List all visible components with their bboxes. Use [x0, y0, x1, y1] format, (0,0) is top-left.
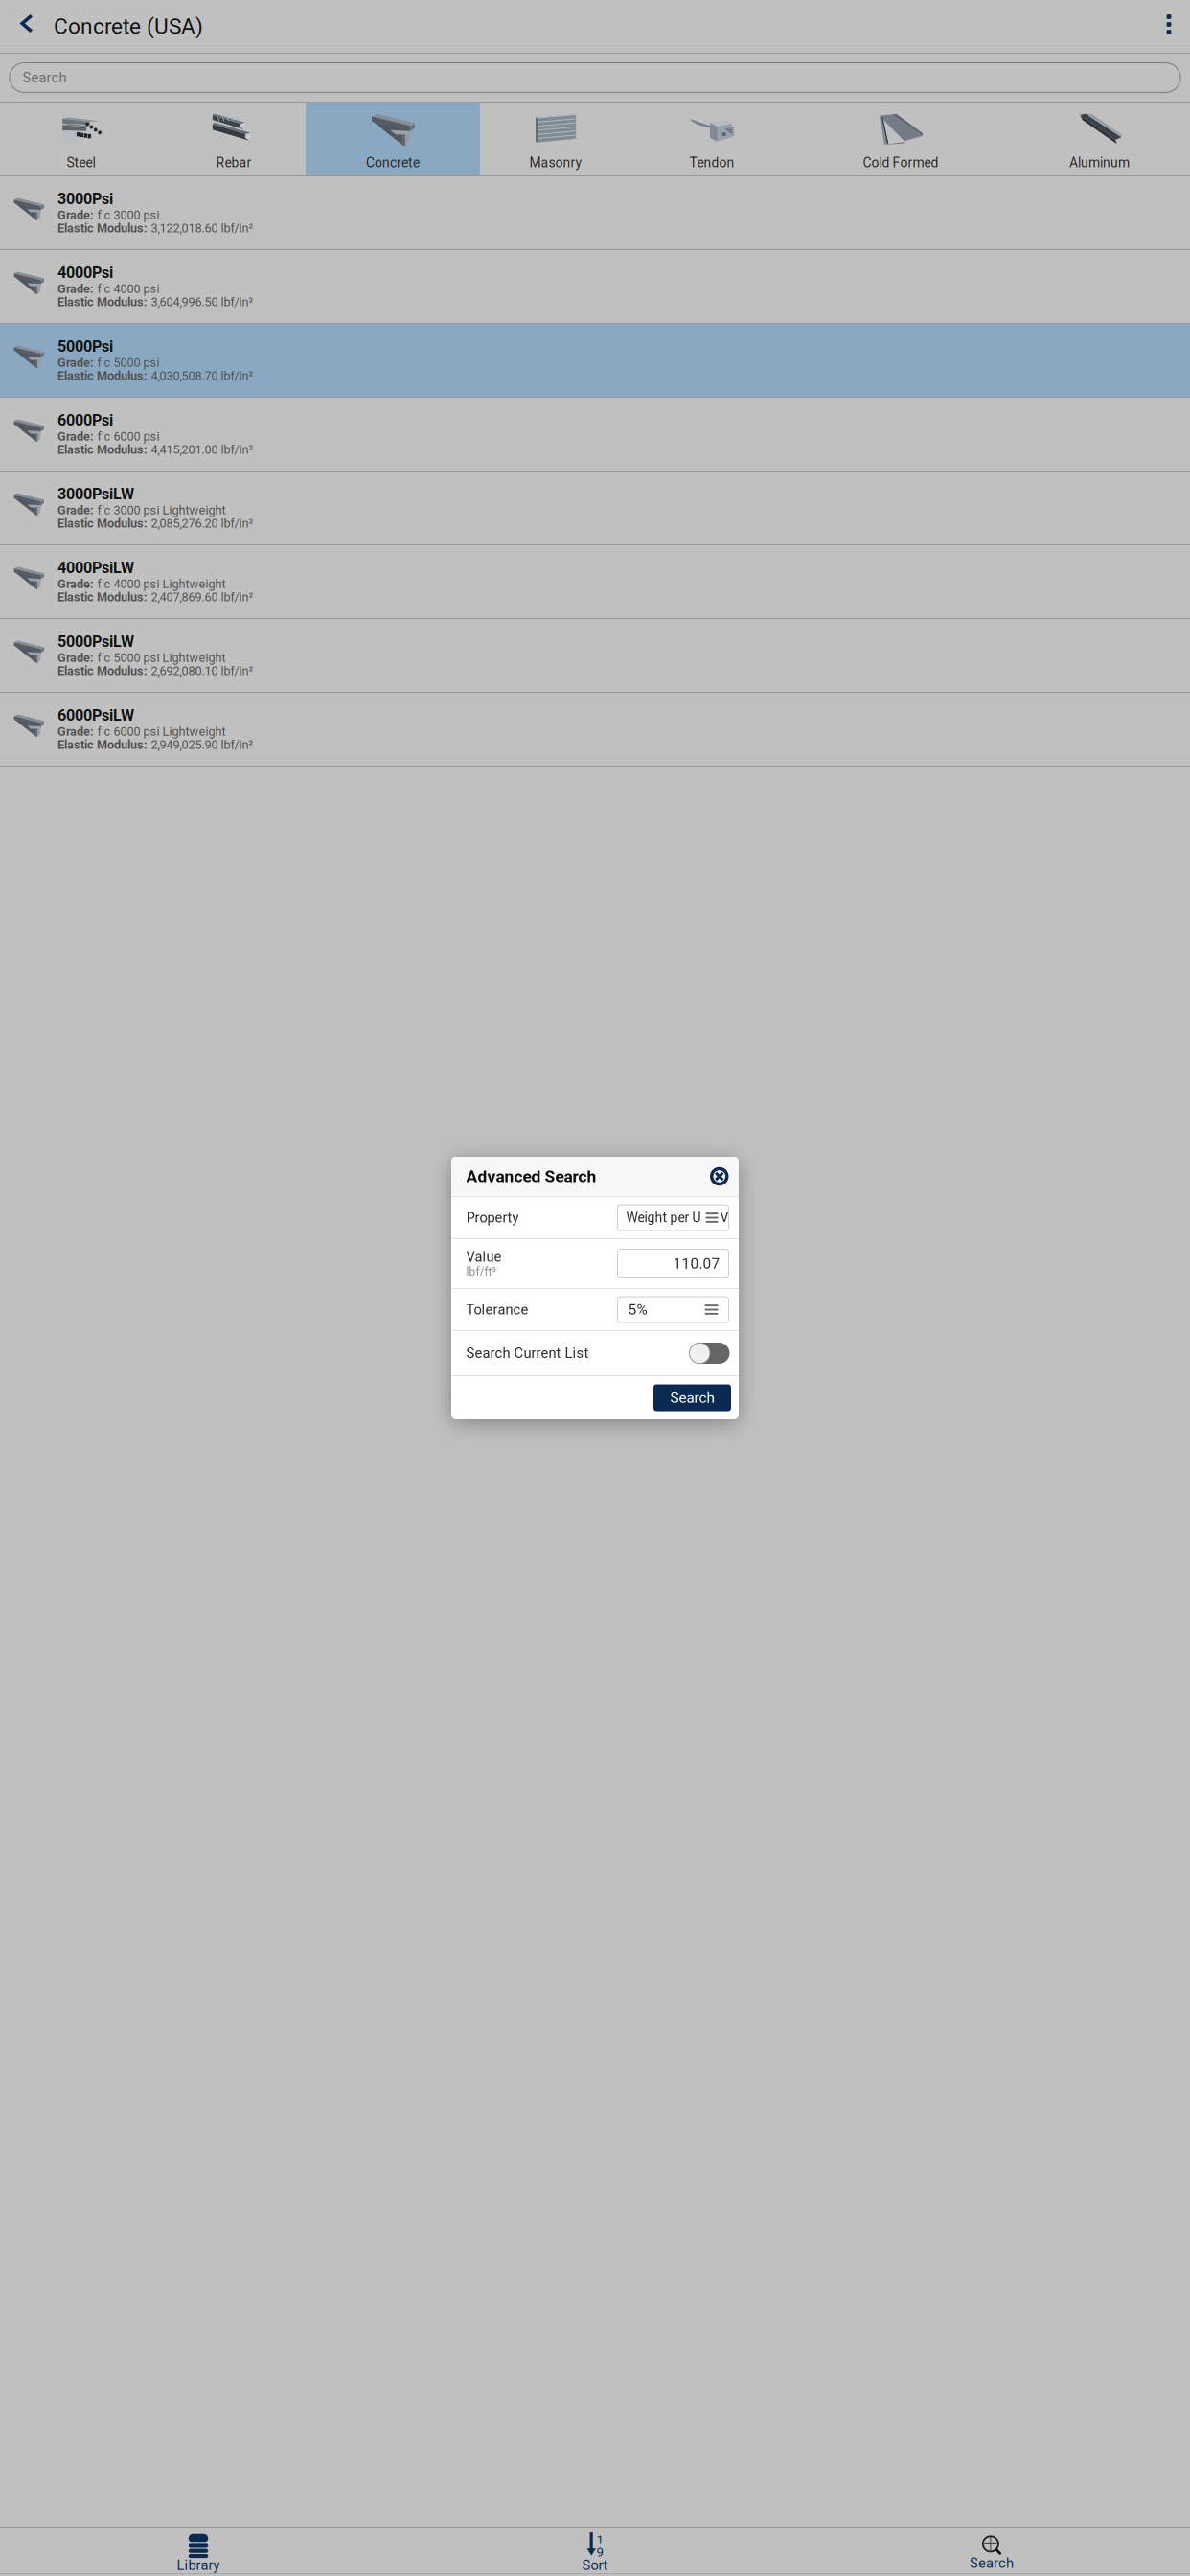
staticText: Weight per U [626, 1210, 701, 1225]
button[interactable]: Concrete [306, 103, 480, 175]
staticText: f'c 5000 psi [97, 355, 160, 370]
staticText: Value [466, 1249, 502, 1265]
staticText: Tendon [689, 155, 734, 171]
staticText: f'c 3000 psi [97, 208, 160, 222]
staticText: Grade: [57, 282, 94, 296]
staticText: f'c 5000 psi Lightweight [97, 651, 226, 665]
button[interactable]: Search [653, 1384, 731, 1411]
staticText: Sort [582, 2557, 608, 2573]
staticText: Rebar [216, 155, 252, 171]
button[interactable]: 4000PsiLW [0, 545, 1190, 619]
staticText: 1 [596, 2532, 603, 2547]
staticText: 2,085,276.20 lbf/in² [151, 516, 253, 531]
button[interactable]: Search [793, 2528, 1190, 2573]
button[interactable]: Steel [0, 103, 162, 175]
staticText: Grade: [57, 503, 94, 517]
staticText: Grade: [57, 355, 94, 370]
staticText: Grade: [57, 429, 94, 443]
staticText: 5000Psi [57, 337, 113, 355]
staticText: 3,604,996.50 lbf/in² [151, 295, 253, 309]
staticText: 3000PsiLW [57, 485, 134, 503]
staticText: Elastic Modulus: [57, 738, 148, 752]
staticText: 110.07 [673, 1255, 720, 1272]
button[interactable]: 1 [397, 2528, 793, 2573]
staticText: Library [177, 2557, 220, 2573]
staticText: 4000PsiLW [57, 559, 134, 577]
staticText: Steel [67, 155, 95, 171]
button[interactable]: Aluminum [1009, 103, 1190, 175]
staticText: Elastic Modulus: [57, 221, 148, 235]
staticText: 9 [596, 2545, 603, 2560]
button[interactable]: 5000PsiLW [0, 619, 1190, 693]
button[interactable]: 6000PsiLW [0, 693, 1190, 767]
staticText: Cold Formed [863, 155, 938, 171]
staticText: Grade: [57, 577, 94, 591]
button[interactable]: Close [710, 1167, 729, 1186]
staticText: V [720, 1210, 729, 1225]
staticText: f'c 4000 psi [97, 282, 160, 296]
staticText: 6000PsiLW [57, 706, 134, 724]
staticText: Search [23, 69, 67, 86]
staticText: 4000Psi [57, 264, 113, 282]
staticText: Search [670, 1389, 714, 1406]
staticText: Search Current List [466, 1345, 589, 1361]
button[interactable]: More options [1148, 0, 1190, 53]
staticText: 3,122,018.60 lbf/in² [151, 221, 253, 235]
staticText: 4,030,508.70 lbf/in² [151, 369, 253, 383]
staticText: f'c 6000 psi Lightweight [97, 724, 226, 739]
staticText: Elastic Modulus: [57, 443, 148, 457]
staticText: 5000PsiLW [57, 632, 134, 651]
button[interactable]: Rebar [162, 103, 306, 175]
button[interactable]: Search Current List [689, 1343, 730, 1364]
button[interactable]: Masonry [480, 103, 631, 175]
staticText: 4,415,201.00 lbf/in² [151, 443, 253, 457]
staticText: f'c 6000 psi [97, 429, 160, 443]
staticText: lbf/ft³ [466, 1265, 496, 1279]
staticText: 2,949,025.90 lbf/in² [151, 738, 253, 752]
staticText: 2,692,080.10 lbf/in² [151, 664, 253, 678]
button[interactable]: 5000Psi [0, 324, 1190, 398]
staticText: Grade: [57, 724, 94, 739]
staticText: Masonry [529, 155, 582, 171]
button[interactable]: Back [0, 0, 54, 53]
staticText: Search [970, 2555, 1014, 2571]
button[interactable]: 3000PsiLW [0, 471, 1190, 545]
button[interactable]: Search [0, 54, 1190, 102]
staticText: Grade: [57, 208, 94, 222]
staticText: Concrete (USA) [54, 14, 203, 39]
staticText: Elastic Modulus: [57, 590, 148, 604]
button[interactable]: Tendon [631, 103, 792, 175]
staticText: 2,407,869.60 lbf/in² [151, 590, 253, 604]
staticText: Advanced Search [466, 1167, 596, 1186]
staticText: Elastic Modulus: [57, 664, 148, 678]
staticText: 6000Psi [57, 411, 113, 429]
staticText: 5% [628, 1301, 647, 1318]
staticText: Elastic Modulus: [57, 516, 148, 531]
staticText: 3000Psi [57, 190, 113, 208]
staticText: Tolerance [466, 1301, 528, 1318]
staticText: Elastic Modulus: [57, 295, 148, 309]
staticText: Grade: [57, 651, 94, 665]
staticText: f'c 3000 psi Lightweight [97, 503, 226, 517]
staticText: f'c 4000 psi Lightweight [97, 577, 226, 591]
button[interactable]: 6000Psi [0, 398, 1190, 471]
button[interactable]: 3000Psi [0, 176, 1190, 250]
button[interactable]: 4000Psi [0, 250, 1190, 324]
staticText: Elastic Modulus: [57, 369, 148, 383]
button[interactable]: Cold Formed [792, 103, 1009, 175]
staticText: Concrete [366, 155, 420, 171]
button[interactable]: Library [0, 2528, 397, 2573]
staticText: Aluminum [1069, 155, 1130, 171]
staticText: Property [466, 1209, 519, 1226]
